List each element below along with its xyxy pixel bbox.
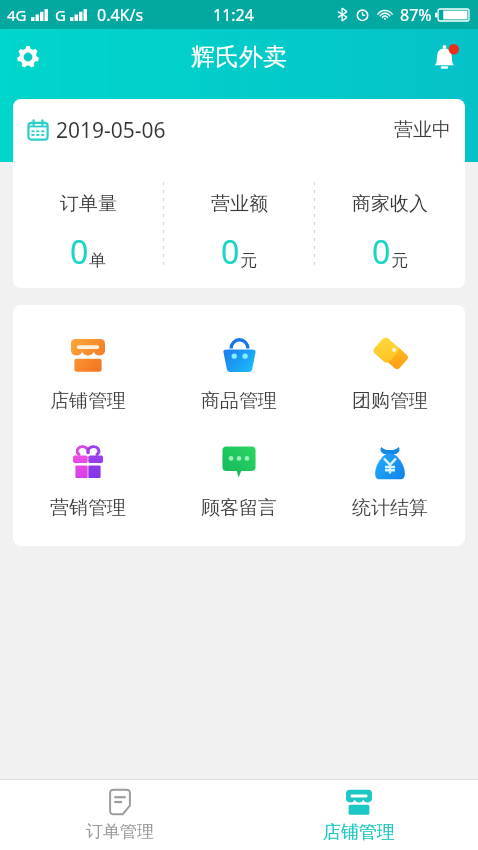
- button[interactable]: 顾客留言: [163, 444, 314, 520]
- button[interactable]: 商品管理: [163, 337, 314, 413]
- staticText: 统计结算: [352, 496, 428, 520]
- staticText: 商品管理: [201, 389, 277, 413]
- staticText: 0: [372, 230, 391, 274]
- button[interactable]: 店铺管理: [239, 780, 478, 850]
- staticText: 元: [391, 250, 408, 271]
- staticText: 单: [89, 250, 106, 271]
- staticText: 营业额: [211, 192, 268, 216]
- staticText: 营业中: [394, 118, 451, 142]
- button[interactable]: 团购管理: [314, 337, 465, 413]
- button[interactable]: 店铺管理: [13, 337, 163, 413]
- staticText: 2019-05-06: [56, 116, 166, 145]
- staticText: 11:24: [213, 4, 254, 26]
- staticText: 顾客留言: [201, 496, 277, 520]
- staticText: 商家收入: [352, 192, 428, 216]
- staticText: 0.4K/s: [97, 4, 144, 26]
- staticText: 0: [70, 230, 89, 274]
- button[interactable]: Settings: [6, 35, 50, 79]
- staticText: 订单管理: [86, 821, 154, 842]
- staticText: G: [55, 5, 66, 25]
- staticText: 元: [240, 250, 257, 271]
- staticText: 店铺管理: [50, 389, 126, 413]
- staticText: 营销管理: [50, 496, 126, 520]
- button[interactable]: 营销管理: [13, 444, 163, 520]
- button[interactable]: Notifications: [424, 35, 468, 79]
- staticText: 87%: [400, 4, 432, 26]
- button[interactable]: 订单管理: [0, 780, 239, 850]
- button[interactable]: 统计结算: [314, 444, 465, 520]
- staticText: 辉氏外卖: [191, 42, 287, 72]
- staticText: 店铺管理: [323, 821, 395, 844]
- staticText: 0: [221, 230, 240, 274]
- staticText: 团购管理: [352, 389, 428, 413]
- staticText: 订单量: [60, 192, 117, 216]
- staticText: 4G: [7, 5, 27, 25]
